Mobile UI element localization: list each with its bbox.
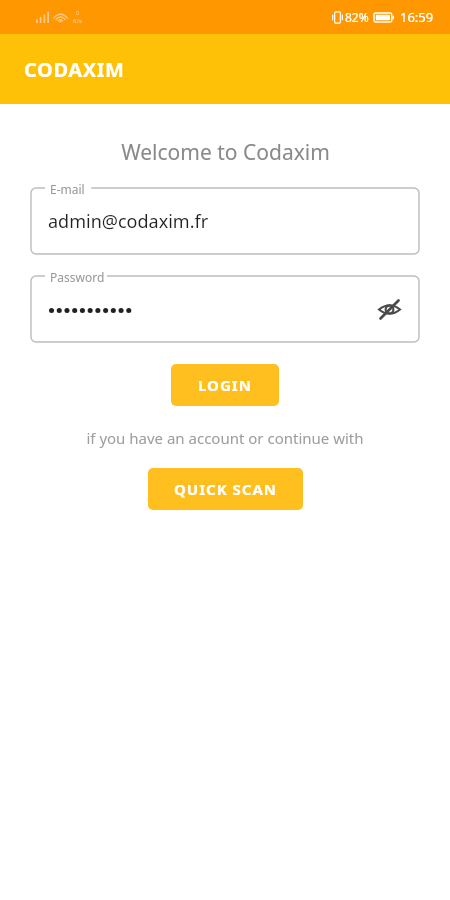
button[interactable]: Password [31,269,419,342]
button[interactable]: LOGIN [171,364,279,406]
staticText: Password [50,269,105,285]
staticText: if you have an account or continue with [86,428,364,448]
staticText: LOGIN [198,375,252,395]
staticText: E-mail [50,181,85,197]
staticText: CODAXIM [24,56,125,83]
staticText: 82% [345,9,369,25]
staticText: 0 [76,10,79,17]
button[interactable]: QUICK SCAN [148,468,303,510]
staticText: admin@codaxim.fr [48,209,209,234]
staticText: Welcome to Codaxim [121,138,330,167]
staticText: QUICK SCAN [174,479,278,499]
staticText: K/s [73,17,82,25]
button[interactable]: Toggle password visibility [367,287,411,331]
button[interactable]: E-mail [31,181,419,254]
staticText: 16:59 [400,8,434,26]
